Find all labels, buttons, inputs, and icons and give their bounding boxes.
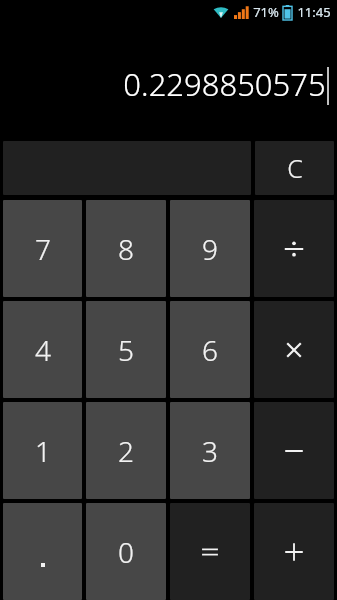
staticText: 5 bbox=[118, 331, 134, 369]
staticText: 0 bbox=[118, 533, 134, 571]
staticText: 9 bbox=[202, 230, 218, 268]
staticText: 2 bbox=[118, 432, 134, 470]
staticText: 8 bbox=[118, 230, 134, 268]
staticText: 7 bbox=[35, 230, 51, 268]
button[interactable]: 5 bbox=[86, 301, 166, 398]
button[interactable]: 4 bbox=[3, 301, 82, 398]
button[interactable]: 8 bbox=[86, 200, 166, 297]
button[interactable]: 0 bbox=[86, 503, 166, 600]
staticText: 11:45 bbox=[297, 3, 331, 21]
button[interactable]: 9 bbox=[170, 200, 250, 297]
button[interactable] bbox=[170, 503, 250, 600]
button[interactable]: C bbox=[255, 141, 334, 195]
button[interactable]: 7 bbox=[3, 200, 82, 297]
staticText: 3 bbox=[202, 432, 218, 470]
button[interactable]: 2 bbox=[86, 402, 166, 499]
button[interactable] bbox=[254, 503, 334, 600]
staticText: 1 bbox=[35, 432, 51, 470]
button[interactable] bbox=[254, 200, 334, 297]
staticText: 4 bbox=[35, 331, 51, 369]
staticText: 0.2298850575 bbox=[123, 63, 326, 105]
button[interactable]: 3 bbox=[170, 402, 250, 499]
button[interactable] bbox=[254, 301, 334, 398]
button[interactable]: 1 bbox=[3, 402, 82, 499]
button[interactable] bbox=[254, 402, 334, 499]
staticText: C bbox=[287, 151, 303, 185]
staticText: 71% bbox=[253, 3, 279, 21]
button[interactable]: 6 bbox=[170, 301, 250, 398]
button[interactable] bbox=[3, 503, 82, 600]
staticText: 6 bbox=[202, 331, 218, 369]
